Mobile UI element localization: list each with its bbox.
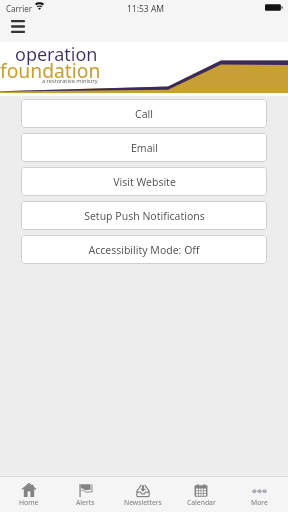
staticText: Email xyxy=(131,141,158,155)
button[interactable]: More xyxy=(230,477,288,512)
staticText: 11:53 AM xyxy=(127,3,165,15)
staticText: More xyxy=(251,498,268,507)
staticText: operation xyxy=(15,42,98,67)
button[interactable]: Calendar xyxy=(172,477,230,512)
staticText: Visit Website xyxy=(113,175,176,189)
staticText: Newsletters xyxy=(124,498,162,507)
button[interactable]: Open navigation menu xyxy=(4,15,31,38)
staticText: Carrier xyxy=(6,3,33,14)
staticText: Calendar xyxy=(187,498,216,507)
button[interactable]: Newsletters xyxy=(114,477,172,512)
staticText: foundation xyxy=(0,57,101,83)
button[interactable]: Call xyxy=(21,99,267,128)
button[interactable]: Accessibility Mode: Off xyxy=(21,235,267,264)
staticText: Setup Push Notifications xyxy=(84,209,205,223)
staticText: Home xyxy=(19,498,39,507)
button[interactable]: Alerts xyxy=(57,477,114,512)
staticText: Accessibility Mode: Off xyxy=(88,243,200,257)
button[interactable]: Email xyxy=(21,133,267,162)
staticText: a restorative ministry xyxy=(42,77,98,85)
button[interactable]: Home xyxy=(0,477,57,512)
button[interactable]: Setup Push Notifications xyxy=(21,201,267,230)
button[interactable]: Visit Website xyxy=(21,167,267,196)
staticText: Alerts xyxy=(76,498,95,507)
staticText: Call xyxy=(135,107,153,121)
